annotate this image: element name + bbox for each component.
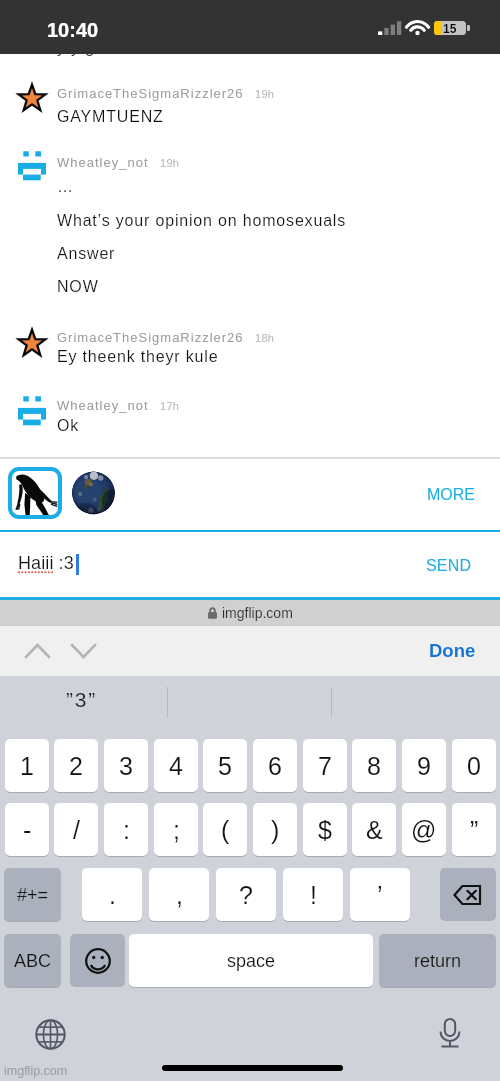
staticText: 17h bbox=[160, 400, 180, 412]
button[interactable]: SEND bbox=[426, 557, 472, 575]
button[interactable]: MORE bbox=[427, 486, 475, 504]
button[interactable]: 0 bbox=[452, 739, 496, 792]
staticText: / bbox=[73, 816, 80, 844]
button[interactable]: Switch keyboard bbox=[30, 1014, 70, 1054]
staticText: y y g bbox=[57, 39, 95, 57]
button[interactable]: , bbox=[149, 868, 209, 921]
staticText: #+= bbox=[17, 885, 49, 905]
staticText: - bbox=[23, 816, 32, 844]
staticText: @ bbox=[411, 816, 437, 844]
button[interactable]: #+= bbox=[4, 868, 61, 921]
button[interactable]: ’ bbox=[350, 868, 410, 921]
button[interactable]: ” bbox=[452, 803, 496, 856]
button[interactable]: space bbox=[129, 934, 373, 987]
staticText: 19h bbox=[255, 88, 275, 100]
button[interactable]: Selected meme image bbox=[8, 467, 62, 519]
staticText: 7 bbox=[318, 752, 332, 780]
button[interactable]: 3 bbox=[104, 739, 148, 792]
button[interactable]: Earth image bbox=[72, 471, 115, 515]
button[interactable]: Emoji keyboard bbox=[70, 934, 125, 987]
staticText: 18h bbox=[255, 332, 275, 344]
staticText: ( bbox=[221, 816, 230, 844]
button[interactable]: @ bbox=[402, 803, 446, 856]
staticText: GrimaceTheSigmaRizzler26 bbox=[57, 330, 244, 345]
staticText: 5 bbox=[218, 752, 232, 780]
staticText: Wheatley_not bbox=[57, 155, 149, 170]
button[interactable]: Backspace bbox=[440, 868, 496, 921]
staticText: … bbox=[57, 178, 74, 196]
button[interactable]: Done bbox=[429, 640, 476, 661]
staticText: ABC bbox=[14, 951, 52, 971]
button[interactable]: 9 bbox=[402, 739, 446, 792]
button[interactable]: 6 bbox=[253, 739, 297, 792]
button[interactable]: : bbox=[104, 803, 148, 856]
staticText: 9 bbox=[417, 752, 431, 780]
staticText: ’ bbox=[377, 881, 383, 909]
button[interactable]: 8 bbox=[352, 739, 396, 792]
staticText: & bbox=[366, 816, 383, 844]
staticText: Haiii :3 bbox=[18, 553, 74, 573]
staticText: GrimaceTheSigmaRizzler26 bbox=[57, 86, 244, 101]
button[interactable]: - bbox=[5, 803, 49, 856]
button[interactable]: Dictation bbox=[430, 1013, 470, 1053]
button[interactable]: & bbox=[352, 803, 396, 856]
button[interactable]: ABC bbox=[4, 934, 61, 987]
staticText: ; bbox=[173, 816, 180, 844]
staticText: 4 bbox=[169, 752, 183, 780]
staticText: space bbox=[227, 951, 276, 971]
button[interactable]: . bbox=[82, 868, 142, 921]
staticText: ”3” bbox=[66, 688, 98, 711]
button[interactable]: 5 bbox=[203, 739, 247, 792]
staticText: 3 bbox=[119, 752, 133, 780]
button[interactable]: / bbox=[54, 803, 98, 856]
staticText: 10:40 bbox=[47, 19, 99, 41]
staticText: 15 bbox=[443, 22, 457, 35]
staticText: : bbox=[123, 816, 130, 844]
staticText: ! bbox=[310, 881, 317, 909]
button[interactable]: 4 bbox=[154, 739, 198, 792]
button[interactable]: Previous field bbox=[20, 638, 54, 664]
staticText: 1 bbox=[20, 752, 34, 780]
button[interactable]: ( bbox=[203, 803, 247, 856]
staticText: Wheatley_not bbox=[57, 398, 149, 413]
staticText: . bbox=[109, 881, 116, 909]
staticText: GAYMTUENZ bbox=[57, 108, 164, 126]
staticText: ) bbox=[271, 816, 280, 844]
button[interactable]: ? bbox=[216, 868, 276, 921]
button[interactable]: 2 bbox=[54, 739, 98, 792]
staticText: imgflip.com bbox=[4, 1064, 68, 1078]
staticText: $ bbox=[318, 816, 332, 844]
staticText: What’s your opinion on homosexuals bbox=[57, 212, 347, 230]
staticText: , bbox=[176, 881, 183, 909]
button[interactable]: ! bbox=[283, 868, 343, 921]
button[interactable]: ; bbox=[154, 803, 198, 856]
staticText: 2 bbox=[69, 752, 83, 780]
staticText: ” bbox=[470, 816, 479, 844]
staticText: Ey theenk theyr kule bbox=[57, 348, 219, 366]
button[interactable]: 1 bbox=[5, 739, 49, 792]
staticText: return bbox=[414, 951, 462, 971]
button[interactable]: 7 bbox=[303, 739, 347, 792]
staticText: imgflip.com bbox=[222, 605, 293, 621]
button[interactable]: Next field bbox=[66, 638, 100, 664]
staticText: 19h bbox=[160, 157, 180, 169]
staticText: Answer bbox=[57, 245, 116, 263]
button[interactable]: return bbox=[379, 934, 496, 987]
staticText: Ok bbox=[57, 417, 80, 435]
staticText: NOW bbox=[57, 278, 99, 296]
button[interactable]: ) bbox=[253, 803, 297, 856]
staticText: 0 bbox=[467, 752, 481, 780]
staticText: 6 bbox=[268, 752, 282, 780]
button[interactable]: $ bbox=[303, 803, 347, 856]
staticText: 8 bbox=[367, 752, 381, 780]
staticText: ? bbox=[239, 881, 253, 909]
